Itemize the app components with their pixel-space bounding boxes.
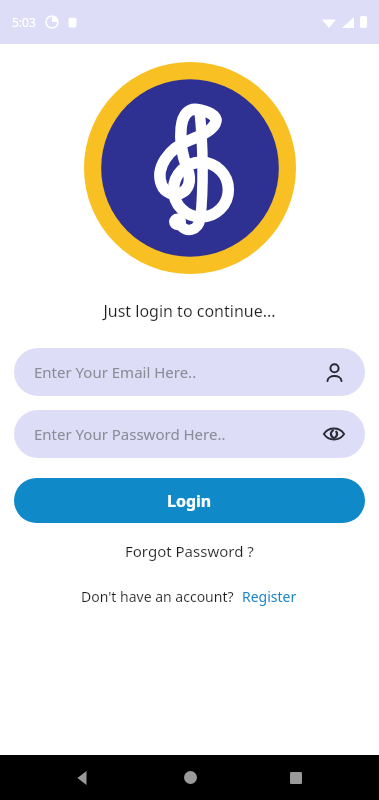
staticText: Register bbox=[242, 587, 297, 606]
staticText: Just login to continue... bbox=[103, 300, 276, 322]
staticText: Enter Your Email Here.. bbox=[34, 362, 321, 382]
staticText: Forgot Password ? bbox=[125, 541, 254, 561]
button[interactable]: Enter Your Email Here.. bbox=[14, 348, 365, 396]
button[interactable]: Enter Your Password Here.. bbox=[14, 410, 365, 458]
button[interactable]: Back bbox=[59, 755, 107, 800]
button[interactable]: Account bbox=[321, 359, 347, 385]
button[interactable]: Register bbox=[240, 585, 299, 608]
staticText: Don't have an account? bbox=[81, 587, 234, 606]
button[interactable]: Login bbox=[14, 478, 365, 523]
button[interactable]: Recent apps bbox=[272, 755, 320, 800]
button[interactable]: Home bbox=[166, 755, 214, 800]
staticText: 5:03 bbox=[12, 14, 36, 30]
button[interactable]: Show password bbox=[321, 421, 347, 447]
staticText: Login bbox=[167, 490, 212, 512]
staticText: Enter Your Password Here.. bbox=[34, 424, 321, 444]
button[interactable]: Forgot Password ? bbox=[117, 537, 262, 565]
